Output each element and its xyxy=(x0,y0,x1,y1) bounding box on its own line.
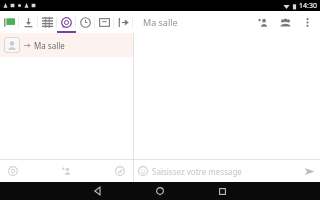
button[interactable]: Validate xyxy=(113,164,127,178)
button[interactable]: Add person xyxy=(252,11,274,33)
button[interactable]: Camera xyxy=(6,164,20,178)
button[interactable]: Add participant xyxy=(60,164,74,178)
staticText: Ma salle xyxy=(143,16,178,28)
button[interactable]: Exit xyxy=(114,11,133,33)
button[interactable]: Back xyxy=(78,182,118,200)
button[interactable]: Ma salle xyxy=(0,33,133,57)
button[interactable]: Files xyxy=(0,11,19,33)
button[interactable]: Saisissez votre message xyxy=(152,166,298,177)
button[interactable]: Chat xyxy=(57,11,76,33)
button[interactable]: Downloads xyxy=(19,11,38,33)
button[interactable]: Home xyxy=(140,182,180,200)
button[interactable]: Recent xyxy=(76,11,95,33)
button[interactable]: More options xyxy=(296,11,318,33)
staticText: Ma salle xyxy=(34,40,65,51)
button[interactable]: People xyxy=(274,11,296,33)
staticText: 14:30 xyxy=(299,1,317,11)
button[interactable]: Send xyxy=(298,160,320,182)
button[interactable]: Recent apps xyxy=(202,182,242,200)
button[interactable]: Archive xyxy=(95,11,114,33)
button[interactable]: Emoji xyxy=(134,162,152,180)
button[interactable]: Grid xyxy=(38,11,57,33)
